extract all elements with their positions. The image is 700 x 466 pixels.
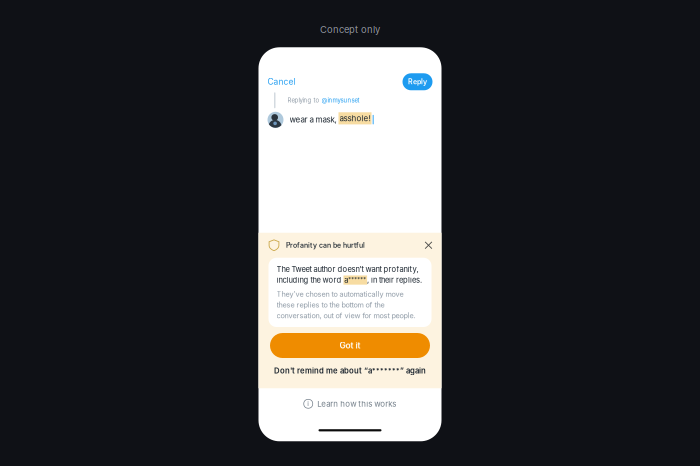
staticText: They've chosen to automatically move [276, 290, 403, 298]
staticText: The Tweet author doesn't want profanity, [276, 265, 418, 274]
staticText: Cancel [267, 77, 295, 87]
button[interactable]: Don't remind me about “a [258, 358, 441, 383]
button[interactable]: wear a mask, [258, 108, 441, 128]
staticText: including the word [276, 275, 343, 285]
button[interactable]: Reply [402, 73, 432, 90]
staticText: ****** [348, 277, 366, 283]
staticText: Profanity can be hurtful [286, 241, 365, 249]
button[interactable]: Cancel [258, 72, 304, 92]
staticText: wear a mask, [289, 115, 338, 124]
staticText: a [344, 275, 348, 285]
staticText: , in their replies. [367, 275, 422, 285]
staticText: Got it [339, 340, 360, 351]
staticText: Reply [408, 77, 427, 86]
staticText: Concept only [320, 24, 380, 35]
staticText: ******* [372, 367, 400, 375]
staticText: asshole! [339, 113, 370, 123]
staticText: Replying to [287, 97, 321, 104]
staticText: ” again [400, 366, 426, 375]
button[interactable]: Got it [270, 333, 430, 358]
staticText: Learn how this works [317, 399, 396, 408]
staticText: these replies to the bottom of the [276, 300, 384, 309]
staticText: conversation, out of view for most peopl… [276, 311, 415, 320]
button[interactable]: Close [416, 235, 441, 255]
staticText: i [307, 400, 309, 408]
staticText: Don't remind me about “a [274, 366, 372, 375]
staticText: @inmysunset [321, 97, 359, 104]
button[interactable]: i [258, 388, 441, 419]
